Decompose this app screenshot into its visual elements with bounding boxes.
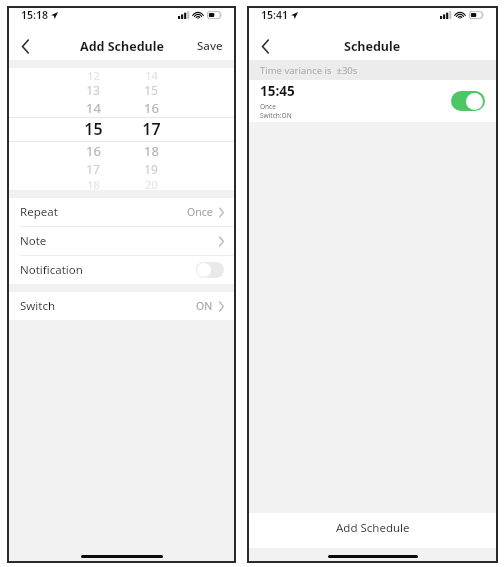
staticText: Once (187, 205, 213, 219)
staticText: 15 (84, 118, 103, 140)
staticText: 12 (87, 68, 100, 81)
staticText: Once (260, 102, 276, 111)
button[interactable]: Switch (9, 292, 234, 320)
staticText: Notification (20, 262, 83, 278)
button[interactable]: Back (9, 32, 41, 60)
staticText: Switch:ON (260, 111, 292, 120)
button[interactable]: Note (9, 227, 234, 255)
staticText: 13 (86, 82, 100, 98)
staticText: 18 (144, 142, 159, 160)
button[interactable]: Back (249, 32, 281, 60)
staticText: 17 (142, 118, 161, 140)
button[interactable]: Schedule enabled (451, 91, 485, 111)
staticText: Save (197, 38, 223, 54)
staticText: 20 (145, 177, 158, 190)
staticText: 15 (144, 82, 158, 98)
staticText: 15:41 (261, 8, 288, 22)
button[interactable]: Notification off (196, 262, 224, 278)
staticText: 16 (86, 142, 101, 160)
button[interactable]: Save (186, 32, 234, 60)
button[interactable]: Notification (9, 256, 234, 284)
staticText: 16 (144, 99, 159, 117)
staticText: Time variance is ±30s (260, 64, 358, 77)
staticText: 15:18 (21, 8, 48, 22)
staticText: 19 (144, 161, 158, 177)
staticText: 15:45 (260, 82, 295, 100)
staticText: Add Schedule (336, 520, 410, 536)
staticText: 14 (145, 68, 158, 81)
staticText: 18 (87, 177, 100, 190)
staticText: ON (196, 299, 213, 313)
staticText: 14 (86, 99, 101, 117)
button[interactable]: 15:45 (249, 80, 496, 122)
staticText: 17 (86, 161, 100, 177)
staticText: Switch (20, 298, 56, 314)
button[interactable]: Add Schedule (249, 513, 496, 548)
staticText: Note (20, 233, 47, 249)
staticText: Schedule (344, 38, 401, 55)
staticText: Repeat (20, 204, 58, 220)
button[interactable]: Repeat (9, 198, 234, 226)
staticText: Add Schedule (80, 38, 164, 55)
